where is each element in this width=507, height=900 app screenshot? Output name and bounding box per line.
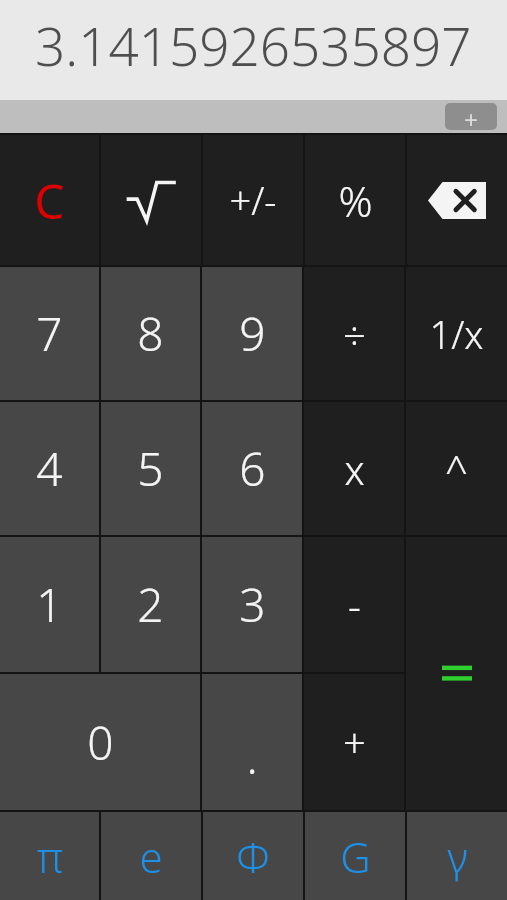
staticText: +: [464, 103, 478, 130]
staticText: 4: [36, 437, 63, 500]
staticText: ^: [445, 442, 468, 496]
button[interactable]: π: [0, 812, 99, 900]
button[interactable]: Square root: [101, 135, 201, 265]
staticText: 6: [239, 437, 266, 500]
staticText: π: [37, 828, 63, 885]
button[interactable]: Φ: [203, 812, 303, 900]
button[interactable]: .: [202, 674, 302, 810]
staticText: 5: [137, 437, 164, 500]
button[interactable]: 1: [0, 537, 99, 672]
staticText: .: [246, 725, 258, 788]
staticText: 1/x: [429, 308, 484, 360]
button[interactable]: 0: [0, 674, 200, 810]
staticText: e: [139, 828, 163, 885]
button[interactable]: Add to memory: [445, 103, 497, 130]
button[interactable]: e: [101, 812, 201, 900]
button[interactable]: Equals: [406, 537, 507, 810]
button[interactable]: -: [304, 537, 404, 672]
staticText: 1: [36, 573, 63, 636]
button[interactable]: 1/x: [406, 267, 507, 400]
staticText: x: [344, 442, 365, 496]
button[interactable]: 8: [101, 267, 200, 400]
staticText: -: [348, 578, 361, 632]
button[interactable]: ^: [406, 402, 507, 535]
staticText: 7: [36, 302, 63, 365]
staticText: γ: [447, 828, 468, 885]
staticText: 8: [137, 302, 164, 365]
staticText: +/-: [229, 174, 277, 226]
button[interactable]: 9: [202, 267, 302, 400]
button[interactable]: C: [0, 135, 99, 265]
staticText: C: [34, 168, 65, 233]
button[interactable]: G: [305, 812, 405, 900]
button[interactable]: γ: [407, 812, 507, 900]
button[interactable]: +: [304, 674, 404, 810]
staticText: G: [340, 828, 371, 885]
staticText: %: [338, 172, 373, 229]
button[interactable]: x: [304, 402, 404, 535]
staticText: 3: [239, 573, 266, 636]
button[interactable]: 7: [0, 267, 99, 400]
button[interactable]: ÷: [304, 267, 404, 400]
button[interactable]: %: [305, 135, 405, 265]
button[interactable]: +/-: [203, 135, 303, 265]
button[interactable]: 5: [101, 402, 200, 535]
staticText: 0: [87, 711, 114, 774]
button[interactable]: 4: [0, 402, 99, 535]
staticText: +: [343, 715, 366, 769]
button[interactable]: 6: [202, 402, 302, 535]
button[interactable]: 2: [101, 537, 200, 672]
staticText: 2: [137, 573, 164, 636]
staticText: Φ: [236, 828, 270, 885]
button[interactable]: 3: [202, 537, 302, 672]
staticText: 3.1415926535897: [35, 9, 472, 81]
button[interactable]: Backspace: [407, 135, 507, 265]
staticText: 9: [239, 302, 266, 365]
staticText: ÷: [343, 307, 366, 361]
